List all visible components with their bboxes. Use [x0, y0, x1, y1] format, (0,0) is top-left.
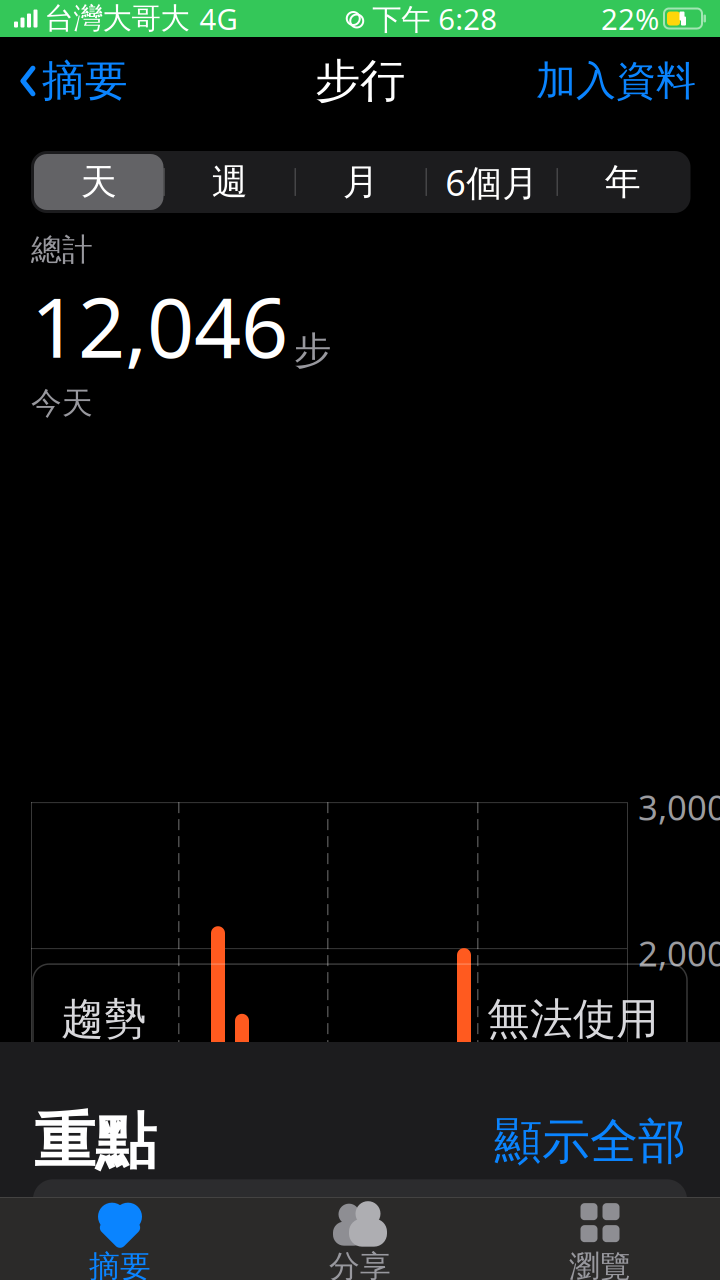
button[interactable]: 年 [558, 154, 687, 210]
button[interactable]: 趨勢 [33, 964, 687, 1074]
button[interactable]: 6個月 [427, 154, 556, 210]
staticText: 顯示全部 [494, 1112, 686, 1171]
staticText: 分享 [329, 1248, 391, 1280]
staticText: 無法使用 [487, 993, 659, 1045]
staticText: 重點 [34, 1104, 156, 1179]
button[interactable]: 週 [165, 154, 294, 210]
staticText: 年 [605, 160, 641, 204]
staticText: 摘要 [42, 55, 128, 107]
staticText: 2,000 [638, 930, 720, 976]
button[interactable]: 分享 [240, 1209, 480, 1279]
staticText: 摘要 [89, 1248, 151, 1280]
staticText: 下午 6:28 [372, 0, 497, 38]
staticText: 週 [212, 160, 248, 204]
staticText: 趨勢 [61, 993, 147, 1045]
button[interactable]: 瀏覽 [480, 1209, 720, 1279]
staticText: 6個月 [445, 158, 538, 206]
button[interactable]: 月 [296, 154, 425, 210]
button[interactable]: 顯示全部 [482, 1104, 686, 1179]
staticText: 12,046 [31, 271, 288, 380]
staticText: 瀏覽 [569, 1248, 631, 1280]
button[interactable]: 加入資料 [526, 46, 720, 115]
staticText: 台灣大哥大 [44, 0, 189, 36]
staticText: 總計 [31, 231, 93, 269]
staticText: 月 [343, 160, 379, 204]
staticText: 今天 [31, 384, 93, 422]
staticText: 3,000 [638, 784, 720, 830]
button[interactable]: 摘要 [0, 45, 138, 117]
staticText: 1,000 [638, 1076, 720, 1122]
staticText: 步行 [315, 53, 405, 109]
staticText: 加入資料 [536, 56, 696, 105]
staticText: 步 [294, 328, 331, 373]
staticText: 天 [81, 160, 117, 204]
staticText: 下午12時 [333, 1250, 470, 1280]
button[interactable]: 摘要 [0, 1209, 240, 1279]
staticText: 22% [601, 0, 659, 38]
button[interactable]: 天 [34, 154, 163, 210]
staticText: 4G [199, 0, 237, 38]
staticText: 上午12時 [38, 1250, 175, 1280]
